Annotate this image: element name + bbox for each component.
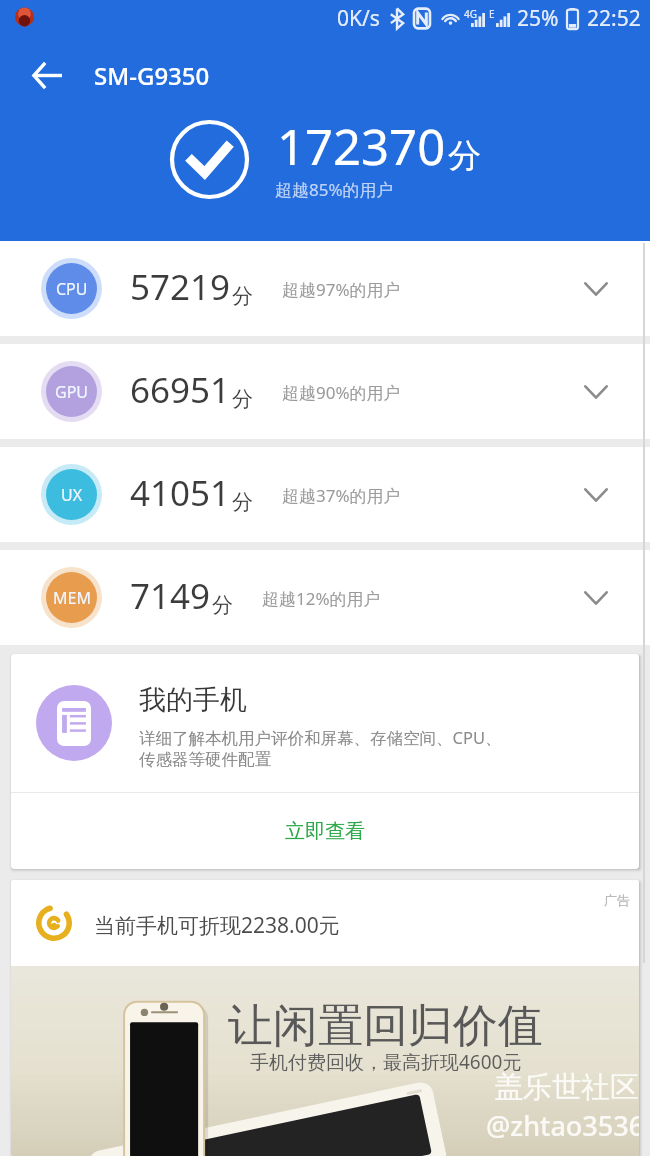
staticText: MEM (53, 587, 91, 609)
staticText: 让闲置回归价值 (228, 998, 543, 1055)
button[interactable]: Expand (568, 364, 624, 420)
staticText: @zhtao3536 (486, 1107, 639, 1144)
staticText: 分 (448, 135, 481, 177)
staticText: 详细了解本机用户评价和屏幕、存储空间、CPU、 传感器等硬件配置 (139, 726, 502, 770)
staticText: UX (61, 484, 83, 506)
button[interactable]: Back (23, 51, 71, 99)
staticText: 当前手机可折现2238.00元 (94, 911, 340, 940)
staticText: 分 (232, 283, 253, 309)
button[interactable]: Expand (568, 467, 624, 523)
staticText: 我的手机 (139, 683, 247, 717)
staticText: 0K/s (337, 4, 380, 33)
staticText: 超越90%的用户 (282, 381, 401, 404)
staticText: 分 (232, 489, 253, 515)
staticText: 立即查看 (285, 819, 365, 844)
staticText: 4G (464, 7, 477, 21)
staticText: 盖乐世社区 (494, 1069, 639, 1106)
staticText: 超越37%的用户 (282, 484, 401, 507)
staticText: 172370 (277, 113, 446, 180)
staticText: 25% (517, 4, 559, 33)
staticText: 7149 (130, 572, 211, 620)
staticText: 41051 (130, 469, 231, 517)
staticText: 22:52 (587, 4, 641, 33)
staticText: GPU (55, 381, 89, 403)
button[interactable]: MEM (0, 550, 650, 645)
button[interactable]: 我的手机 (11, 654, 639, 792)
staticText: E (489, 7, 495, 21)
staticText: 66951 (130, 366, 231, 414)
button[interactable]: Expand (568, 570, 624, 626)
staticText: SM-G9350 (94, 59, 210, 92)
staticText: 超越85%的用户 (275, 178, 394, 201)
staticText: 分 (212, 592, 233, 618)
button[interactable]: Expand (568, 261, 624, 317)
button[interactable]: CPU (0, 241, 650, 336)
button[interactable]: GPU (0, 344, 650, 439)
staticText: CPU (56, 278, 88, 300)
button[interactable]: 当前手机可折现2238.00元 (11, 880, 639, 1156)
button[interactable]: 立即查看 (11, 793, 639, 869)
staticText: 超越97%的用户 (282, 278, 401, 301)
staticText: 手机付费回收，最高折现4600元 (250, 1049, 522, 1075)
staticText: 57219 (130, 263, 231, 311)
staticText: 分 (232, 386, 253, 412)
button[interactable]: UX (0, 447, 650, 542)
staticText: 广告 (604, 892, 630, 908)
staticText: 超越12%的用户 (262, 587, 381, 610)
